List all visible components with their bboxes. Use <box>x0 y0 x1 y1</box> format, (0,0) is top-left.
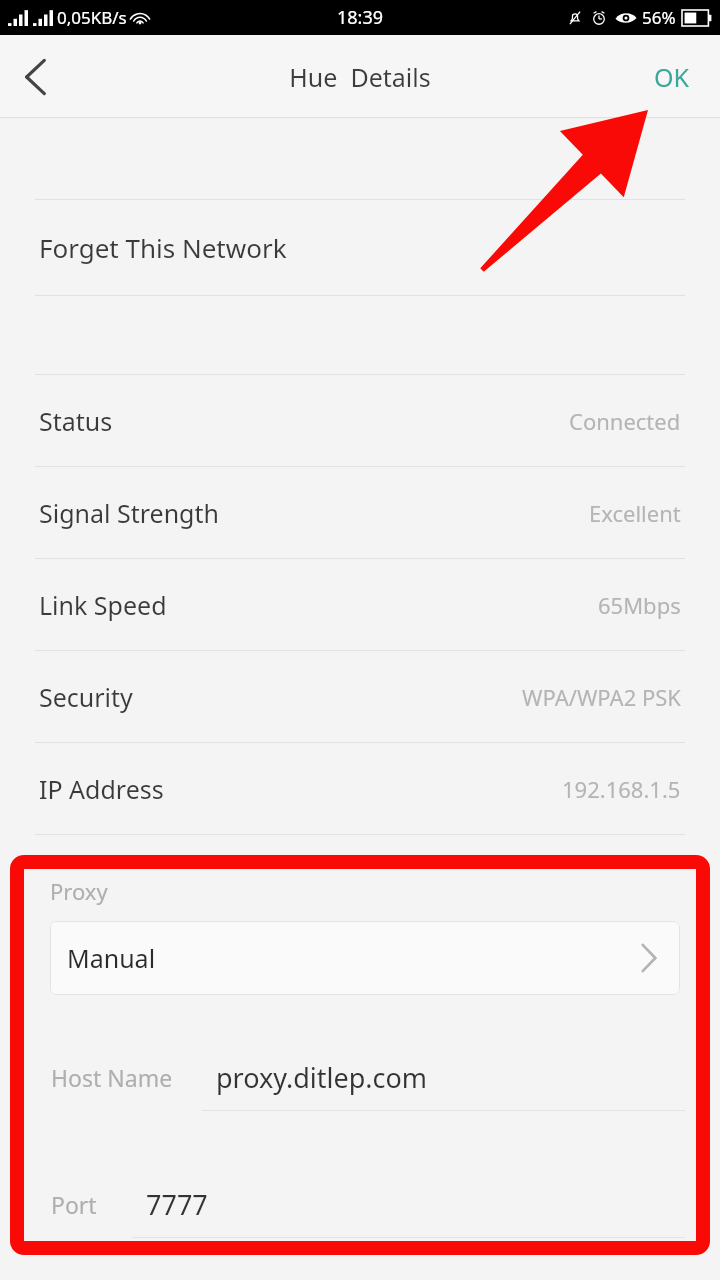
staticText: Manual <box>67 941 156 975</box>
staticText: Security <box>39 680 133 714</box>
staticText: Status <box>39 404 113 438</box>
staticText: 65Mbps <box>598 590 681 620</box>
staticText: Forget This Network <box>39 230 287 265</box>
staticText: 56% <box>642 6 676 29</box>
button[interactable]: Link Speed <box>0 559 720 650</box>
staticText: WPA/WPA2 PSK <box>522 682 681 712</box>
button[interactable]: Host Name <box>27 1043 693 1111</box>
staticText: proxy.ditlep.com <box>216 1059 428 1096</box>
staticText: Proxy <box>50 876 108 906</box>
button[interactable]: Manual <box>50 921 680 995</box>
button[interactable]: Status <box>0 375 720 466</box>
staticText: IP Address <box>39 772 164 806</box>
staticText: Excellent <box>589 498 681 528</box>
staticText: 192.168.1.5 <box>562 774 681 804</box>
staticText: Hue Details <box>289 60 431 94</box>
button[interactable]: Forget This Network <box>0 200 720 295</box>
button[interactable]: Back <box>0 41 72 113</box>
button[interactable]: Port <box>27 1171 693 1238</box>
button[interactable]: Signal Strength <box>0 467 720 558</box>
staticText: Connected <box>569 406 681 436</box>
staticText: Port <box>51 1189 97 1220</box>
staticText: 0,05KB/s <box>57 6 127 29</box>
staticText: OK <box>654 60 690 94</box>
staticText: Link Speed <box>39 588 167 622</box>
button[interactable]: Security <box>0 651 720 742</box>
staticText: Signal Strength <box>39 496 219 530</box>
staticText: 18:39 <box>337 5 384 30</box>
staticText: Host Name <box>51 1062 173 1093</box>
staticText: 7777 <box>146 1186 208 1223</box>
button[interactable]: IP Address <box>0 743 720 834</box>
button[interactable]: OK <box>624 35 720 118</box>
